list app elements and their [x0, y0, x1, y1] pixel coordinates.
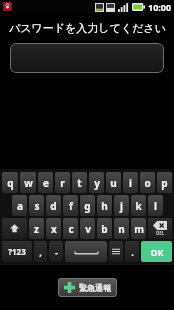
staticText: c — [68, 222, 74, 236]
staticText: x — [51, 222, 57, 236]
button[interactable]: g — [80, 195, 95, 216]
staticText: OK — [150, 246, 164, 258]
button[interactable]: f — [63, 195, 78, 216]
staticText: y — [94, 176, 100, 190]
button[interactable]: p — [157, 172, 172, 193]
staticText: z — [34, 222, 39, 236]
button[interactable]: Space — [65, 241, 107, 262]
button[interactable]: Settings — [109, 241, 123, 262]
staticText: s — [34, 199, 40, 213]
button[interactable]: ?123 — [2, 241, 32, 262]
button[interactable]: t — [72, 172, 87, 193]
button[interactable]: OK — [141, 241, 172, 262]
button[interactable]: u — [106, 172, 121, 193]
staticText: d — [50, 199, 57, 213]
button[interactable]: n — [114, 218, 129, 239]
button[interactable]: v — [80, 218, 95, 239]
staticText: l — [154, 199, 157, 213]
staticText: j — [120, 199, 123, 213]
button[interactable]: Delete — [148, 218, 172, 239]
button[interactable]: h — [97, 195, 112, 216]
staticText: h — [101, 199, 108, 213]
staticText: ?123 — [8, 246, 26, 257]
button[interactable]: s — [29, 195, 44, 216]
staticText: f — [69, 199, 73, 213]
staticText: p — [161, 176, 168, 190]
button[interactable]: q — [2, 172, 18, 193]
staticText: r — [60, 176, 65, 190]
button[interactable]: e — [38, 172, 53, 193]
staticText: 緊急通報 — [79, 283, 111, 293]
button[interactable]: , — [34, 241, 47, 262]
button[interactable]: . — [125, 241, 139, 262]
staticText: o — [144, 176, 151, 190]
button[interactable]: z — [29, 218, 44, 239]
button[interactable]: j — [114, 195, 129, 216]
button[interactable]: y — [89, 172, 104, 193]
staticText: n — [118, 222, 125, 236]
staticText: a — [17, 199, 23, 213]
staticText: i — [129, 176, 132, 190]
staticText: t — [77, 176, 82, 190]
staticText: w — [24, 176, 33, 190]
button[interactable]: Shift — [2, 218, 27, 239]
staticText: g — [84, 199, 91, 213]
staticText: e — [43, 176, 49, 190]
button[interactable]: m — [131, 218, 146, 239]
staticText: m — [134, 222, 144, 236]
button[interactable]: - — [49, 241, 63, 262]
staticText: q — [7, 176, 14, 190]
staticText: - — [55, 246, 58, 258]
button[interactable]: c — [63, 218, 78, 239]
staticText: パスワードを入力してください — [9, 21, 166, 35]
button[interactable]: x — [46, 218, 61, 239]
staticText: 10:00 — [148, 1, 172, 13]
button[interactable]: 緊急通報 — [58, 278, 117, 297]
button[interactable]: w — [20, 172, 36, 193]
button[interactable]: i — [123, 172, 138, 193]
staticText: u — [110, 176, 117, 190]
staticText: k — [135, 199, 142, 213]
staticText: b — [101, 222, 108, 236]
staticText: . — [131, 246, 134, 258]
staticText: v — [85, 222, 91, 236]
button[interactable]: r — [55, 172, 70, 193]
button[interactable]: l — [148, 195, 163, 216]
button[interactable]: o — [140, 172, 155, 193]
staticText: , — [39, 246, 42, 258]
button[interactable]: k — [131, 195, 146, 216]
staticText: DEL — [156, 230, 165, 236]
button[interactable]: d — [46, 195, 61, 216]
button[interactable]: b — [97, 218, 112, 239]
button[interactable]: a — [12, 195, 27, 216]
button[interactable]: Password input — [10, 43, 164, 73]
